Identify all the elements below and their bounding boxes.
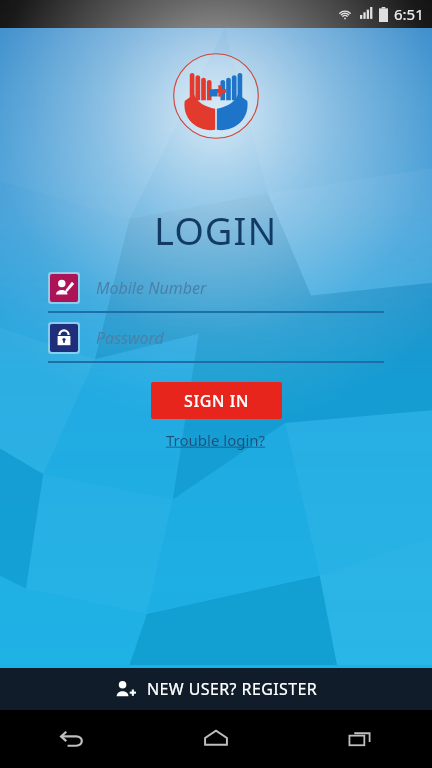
button[interactable]: Password xyxy=(96,327,384,349)
staticText: SIGN IN xyxy=(184,390,249,412)
staticText: Trouble login? xyxy=(166,430,266,450)
button[interactable]: Mobile Number xyxy=(50,274,78,302)
button[interactable]: Recent apps xyxy=(288,710,432,768)
staticText: Password xyxy=(96,327,164,349)
button[interactable]: Home xyxy=(144,710,288,768)
staticText: 6:51 xyxy=(394,4,424,24)
button[interactable]: Back xyxy=(0,710,144,768)
button[interactable]: Trouble login? xyxy=(160,428,272,452)
button[interactable]: NEW USER? REGISTER xyxy=(0,668,432,710)
button[interactable]: SIGN IN xyxy=(151,382,282,419)
button[interactable]: Mobile Number xyxy=(96,277,384,299)
staticText: NEW USER? REGISTER xyxy=(147,678,318,700)
staticText: LOGIN xyxy=(154,204,278,256)
staticText: Mobile Number xyxy=(96,277,207,299)
button[interactable]: Password xyxy=(50,324,78,352)
